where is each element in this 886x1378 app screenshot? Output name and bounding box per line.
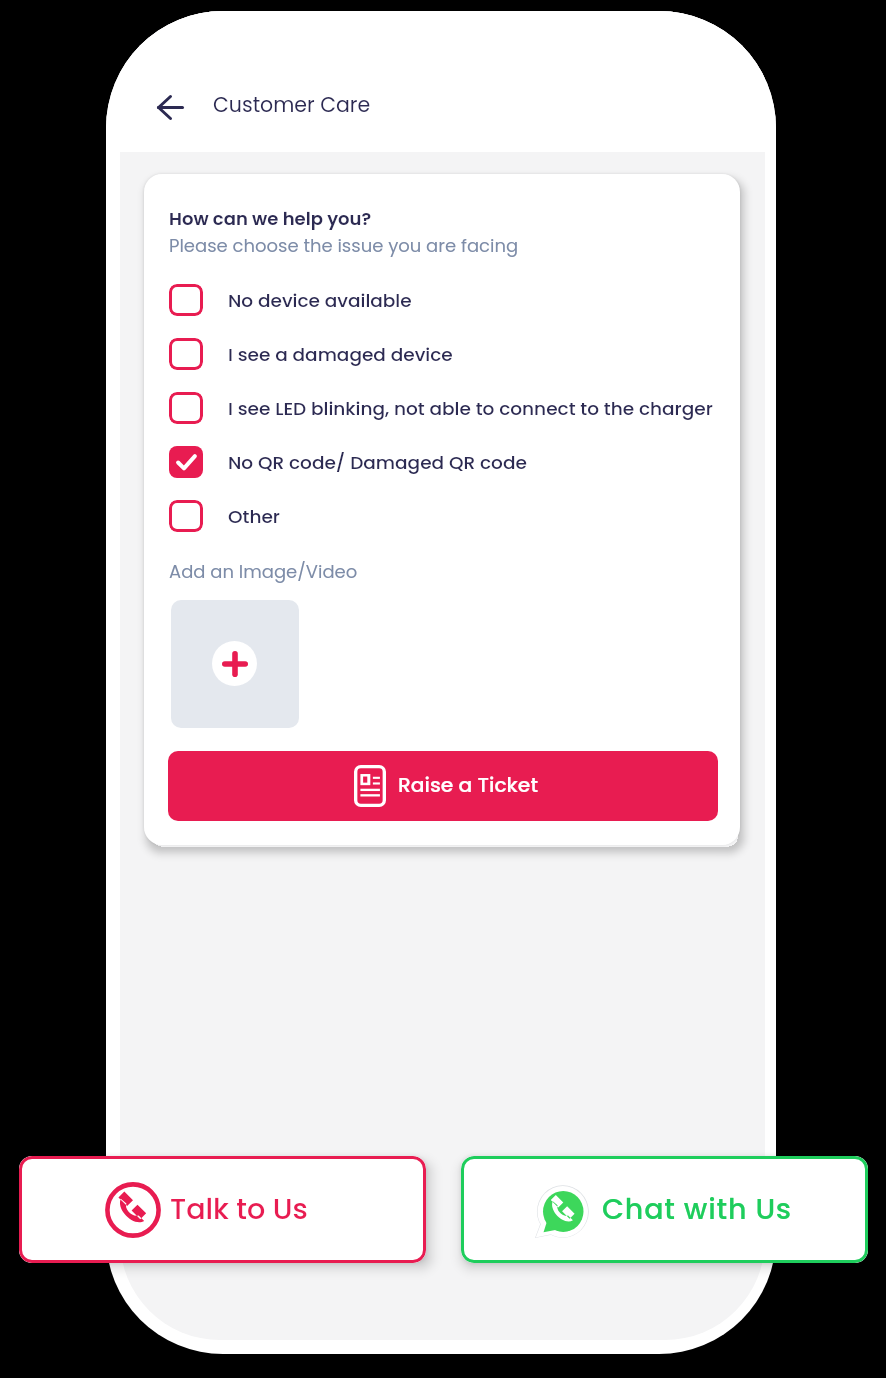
staticText: Customer Care [213, 90, 371, 119]
staticText: Talk to Us [170, 1189, 308, 1229]
staticText: How can we help you? [169, 206, 372, 231]
button[interactable]: Back [148, 85, 192, 129]
button[interactable]: Raise a Ticket [168, 751, 718, 821]
staticText: No QR code/ Damaged QR code [228, 450, 527, 476]
button[interactable]: No QR code/ Damaged QR code [169, 439, 714, 485]
staticText: Chat with Us [602, 1189, 792, 1229]
button[interactable]: No device available [169, 277, 714, 323]
staticText: Add an Image/Video [169, 559, 358, 584]
staticText: I see a damaged device [228, 342, 453, 368]
staticText: Please choose the issue you are facing [169, 233, 519, 258]
button[interactable]: Add an image or video [171, 600, 299, 728]
button[interactable]: I see a damaged device [169, 331, 714, 377]
staticText: No device available [228, 288, 412, 314]
staticText: Raise a Ticket [398, 771, 538, 799]
staticText: I see LED blinking, not able to connect … [228, 396, 713, 422]
staticText: Other [228, 504, 280, 530]
button[interactable]: Talk to Us [19, 1156, 426, 1263]
button[interactable]: I see LED blinking, not able to connect … [169, 385, 714, 431]
button[interactable]: Chat with Us [461, 1156, 868, 1263]
button[interactable]: Other [169, 493, 714, 539]
